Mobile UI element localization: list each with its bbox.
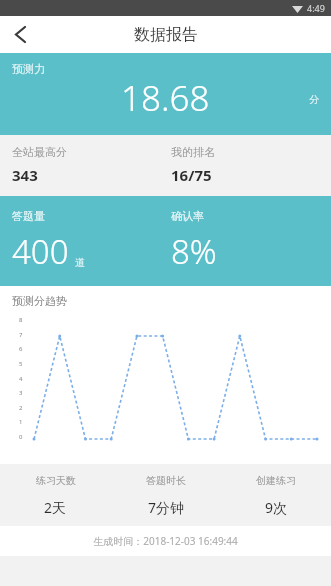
button[interactable]: Back <box>0 16 40 53</box>
staticText: 2天 <box>44 498 67 517</box>
staticText: 4 <box>19 375 23 383</box>
staticText: 生成时间：2018-12-03 16:49:44 <box>93 534 238 548</box>
staticText: 3 <box>19 389 23 397</box>
staticText: 全站最高分 <box>12 145 67 159</box>
staticText: 8% <box>171 229 217 274</box>
staticText: 分 <box>309 93 319 106</box>
staticText: 答题时长 <box>146 474 186 487</box>
staticText: 7 <box>19 331 23 339</box>
staticText: 400 <box>12 229 69 274</box>
staticText: 道 <box>75 256 85 269</box>
staticText: 确认率 <box>171 209 204 223</box>
staticText: 8 <box>19 316 23 324</box>
staticText: 16/75 <box>171 165 212 185</box>
button[interactable]: 练习天数 <box>0 474 111 517</box>
staticText: 答题量 <box>12 209 45 223</box>
staticText: 6 <box>19 345 23 353</box>
staticText: 数据报告 <box>134 25 198 45</box>
staticText: 我的排名 <box>171 145 215 159</box>
button[interactable]: 答题时长 <box>111 474 221 517</box>
staticText: 4:49 <box>307 2 325 14</box>
staticText: 预测力 <box>12 62 45 76</box>
staticText: 1 <box>19 418 23 426</box>
staticText: 343 <box>12 165 38 185</box>
staticText: 9次 <box>265 498 288 517</box>
staticText: 2 <box>19 404 23 412</box>
staticText: 0 <box>19 433 23 441</box>
staticText: 练习天数 <box>36 474 76 487</box>
staticText: 预测分趋势 <box>12 294 67 308</box>
staticText: 创建练习 <box>256 474 296 487</box>
staticText: 5 <box>19 360 23 368</box>
button[interactable]: 创建练习 <box>221 474 331 517</box>
staticText: 18.68 <box>121 74 210 122</box>
staticText: 7分钟 <box>148 498 185 517</box>
